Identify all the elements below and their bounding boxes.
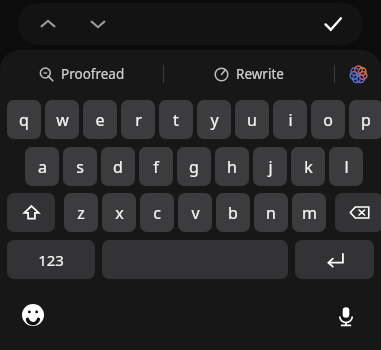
button[interactable]: Voice input [330,300,362,332]
button[interactable]: Backspace [335,193,381,232]
button[interactable]: y [197,100,231,139]
button[interactable]: t [159,100,193,139]
button[interactable]: AI assistant [335,58,381,90]
staticText: s [76,156,84,178]
staticText: f [153,156,159,178]
button[interactable]: g [177,147,211,186]
button[interactable]: Next [80,6,116,42]
staticText: Rewrite [236,65,284,83]
staticText: q [19,109,29,131]
button[interactable]: o [311,100,345,139]
button[interactable]: Proofread [0,58,163,90]
staticText: p [361,109,371,131]
staticText: w [56,109,69,131]
button[interactable]: a [25,147,59,186]
staticText: t [173,109,179,131]
button[interactable]: c [140,193,174,232]
staticText: a [38,156,47,178]
staticText: 123 [38,250,64,270]
button[interactable]: b [216,193,250,232]
staticText: m [302,202,317,224]
staticText: y [210,109,219,131]
button[interactable]: Previous [30,6,66,42]
staticText: Proofread [61,65,125,83]
button[interactable]: q [7,100,41,139]
button[interactable]: d [101,147,135,186]
staticText: d [113,156,123,178]
staticText: j [268,156,273,178]
staticText: o [323,109,333,131]
button[interactable]: l [329,147,363,186]
button[interactable]: u [235,100,269,139]
staticText: v [191,202,200,224]
button[interactable]: Emoji [18,300,48,330]
staticText: e [95,109,105,131]
button[interactable]: s [63,147,97,186]
staticText: x [115,202,124,224]
button[interactable]: Shift [7,193,55,232]
button[interactable]: i [273,100,307,139]
button[interactable]: p [349,100,381,139]
button[interactable]: j [253,147,287,186]
staticText: i [288,109,293,131]
staticText: u [247,109,257,131]
button[interactable]: n [254,193,288,232]
button[interactable]: 123 [7,240,95,279]
button[interactable]: z [64,193,98,232]
button[interactable]: m [292,193,326,232]
button[interactable]: Done [313,4,353,44]
button[interactable]: x [102,193,136,232]
staticText: c [153,202,161,224]
staticText: k [304,156,313,178]
staticText: z [77,202,85,224]
button[interactable]: k [291,147,325,186]
staticText: l [344,156,349,178]
button[interactable]: w [45,100,79,139]
button[interactable]: Rewrite [164,58,334,90]
staticText: g [189,156,199,178]
button[interactable]: h [215,147,249,186]
button[interactable]: v [178,193,212,232]
button[interactable]: e [83,100,117,139]
button[interactable]: Enter [295,240,374,279]
staticText: r [135,109,142,131]
button[interactable]: f [139,147,173,186]
button[interactable]: r [121,100,155,139]
staticText: h [227,156,237,178]
staticText: n [266,202,276,224]
staticText: b [228,202,238,224]
